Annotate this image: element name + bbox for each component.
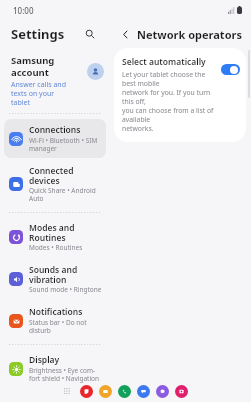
button[interactable]: Display — [4, 349, 106, 388]
staticText: Notifications — [29, 306, 83, 318]
button[interactable]: Back — [116, 25, 134, 43]
button[interactable]: App 3 — [137, 385, 150, 398]
staticText: Status bar • Do not disturb — [29, 318, 87, 335]
button[interactable]: App 0 — [80, 385, 93, 398]
button[interactable]: App 2 — [118, 385, 131, 398]
staticText: Modes and Routines — [29, 222, 75, 243]
staticText: Wi-Fi • Bluetooth • SIM manager — [29, 136, 98, 153]
staticText: Display — [29, 354, 60, 366]
staticText: Select automatically — [122, 56, 206, 68]
button[interactable]: Select automatically toggle — [221, 64, 240, 75]
staticText: Modes • Routines — [29, 243, 83, 252]
staticText: Samsung account — [11, 54, 55, 78]
button[interactable]: Samsung account — [11, 54, 104, 107]
button[interactable]: App 5 — [175, 385, 188, 398]
button[interactable]: Notifications — [4, 301, 106, 340]
staticText: Brightness • Eye com- fort shield • Navi… — [29, 366, 100, 383]
staticText: Connections — [29, 124, 81, 136]
staticText: Quick Share • Android Auto — [29, 186, 96, 203]
button[interactable]: Connected devices — [4, 160, 106, 208]
staticText: Settings — [11, 25, 65, 43]
button[interactable]: Search — [81, 25, 99, 43]
staticText: Sound mode • Ringtone — [29, 285, 102, 294]
button[interactable]: App 4 — [156, 385, 169, 398]
button[interactable]: App 1 — [99, 385, 112, 398]
button[interactable]: Connections — [4, 119, 106, 158]
button[interactable]: Select automatically — [114, 48, 246, 142]
staticText: Network operators — [137, 27, 242, 42]
staticText: 10:00 — [13, 5, 34, 16]
staticText: Let your tablet choose the best mobile n… — [122, 70, 217, 133]
button[interactable]: Sounds and vibration — [4, 259, 106, 299]
staticText: Sounds and vibration — [29, 264, 78, 285]
staticText: Connected devices — [29, 165, 102, 186]
staticText: Answer calls and texts on your tablet — [11, 80, 66, 107]
button[interactable]: Apps — [60, 384, 74, 398]
button[interactable]: Modes and Routines — [4, 217, 106, 257]
